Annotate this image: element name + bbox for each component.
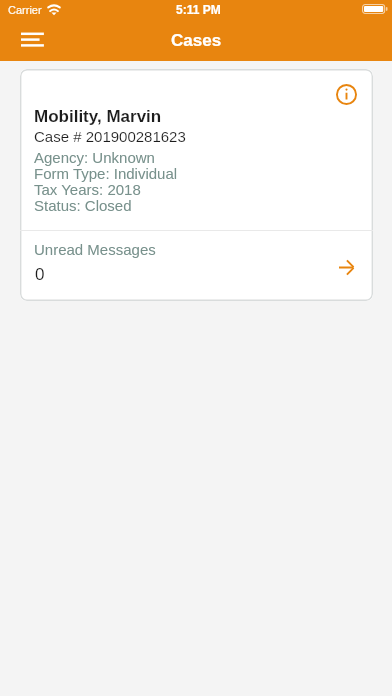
staticText: Status: Closed: [34, 197, 132, 214]
staticText: Form Type: Individual: [34, 165, 178, 182]
staticText: Mobility, Marvin: [34, 107, 162, 126]
staticText: Cases: [171, 31, 222, 50]
button[interactable]: Menu: [10, 17, 54, 61]
staticText: Tax Years: 2018: [34, 181, 141, 198]
staticText: 5:11 PM: [176, 3, 221, 16]
staticText: 0: [35, 265, 45, 284]
staticText: Carrier: [8, 4, 42, 16]
button[interactable]: Case information: [326, 74, 366, 114]
button[interactable]: Open case messages: [326, 247, 366, 287]
staticText: Agency: Unknown: [34, 149, 155, 166]
staticText: Unread Messages: [34, 241, 156, 258]
staticText: Case # 201900281623: [34, 128, 186, 145]
button[interactable]: Mobility, Marvin: [20, 69, 373, 301]
